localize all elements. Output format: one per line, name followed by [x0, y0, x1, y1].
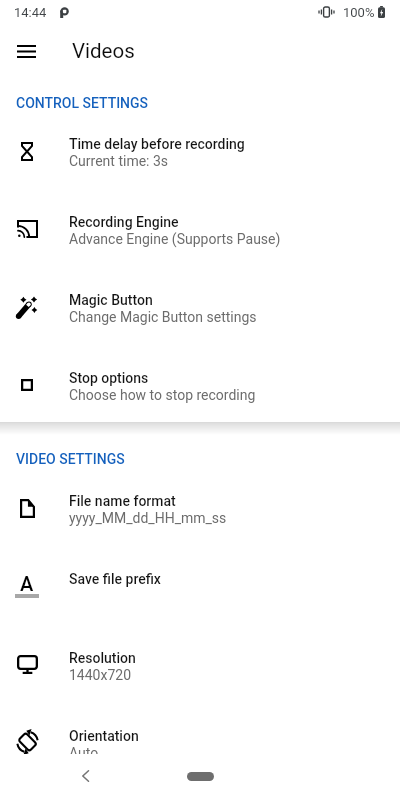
staticText: VIDEO SETTINGS: [16, 451, 125, 467]
button[interactable]: Magic Button: [0, 273, 400, 351]
staticText: Save file prefix: [69, 571, 161, 587]
staticText: yyyy_MM_dd_HH_mm_ss: [69, 510, 227, 526]
staticText: Choose how to stop recording: [69, 387, 256, 403]
button[interactable]: Back: [62, 753, 108, 799]
button[interactable]: Recording Engine: [0, 195, 400, 273]
staticText: A: [20, 572, 34, 593]
staticText: 14:44: [14, 5, 47, 20]
staticText: Orientation: [69, 728, 139, 744]
staticText: CONTROL SETTINGS: [16, 95, 149, 111]
button[interactable]: Resolution: [0, 631, 400, 709]
button[interactable]: Home: [187, 772, 214, 781]
staticText: Resolution: [69, 650, 136, 666]
staticText: File name format: [69, 493, 176, 509]
button[interactable]: A: [0, 552, 400, 630]
staticText: Stop options: [69, 370, 149, 386]
button[interactable]: File name format: [0, 474, 400, 552]
button[interactable]: Open navigation drawer: [2, 27, 50, 75]
staticText: Current time: 3s: [69, 153, 169, 169]
staticText: Magic Button: [69, 292, 153, 308]
button[interactable]: Stop options: [0, 351, 400, 429]
staticText: 100%: [343, 5, 375, 20]
button[interactable]: Orientation: [0, 709, 400, 787]
button[interactable]: Time delay before recording: [0, 117, 400, 195]
staticText: Auto: [69, 745, 99, 761]
staticText: 1440x720: [69, 667, 132, 683]
staticText: Advance Engine (Supports Pause): [69, 231, 281, 247]
staticText: Videos: [72, 39, 135, 63]
staticText: Time delay before recording: [69, 136, 245, 152]
staticText: Recording Engine: [69, 214, 179, 230]
staticText: Change Magic Button settings: [69, 309, 257, 325]
